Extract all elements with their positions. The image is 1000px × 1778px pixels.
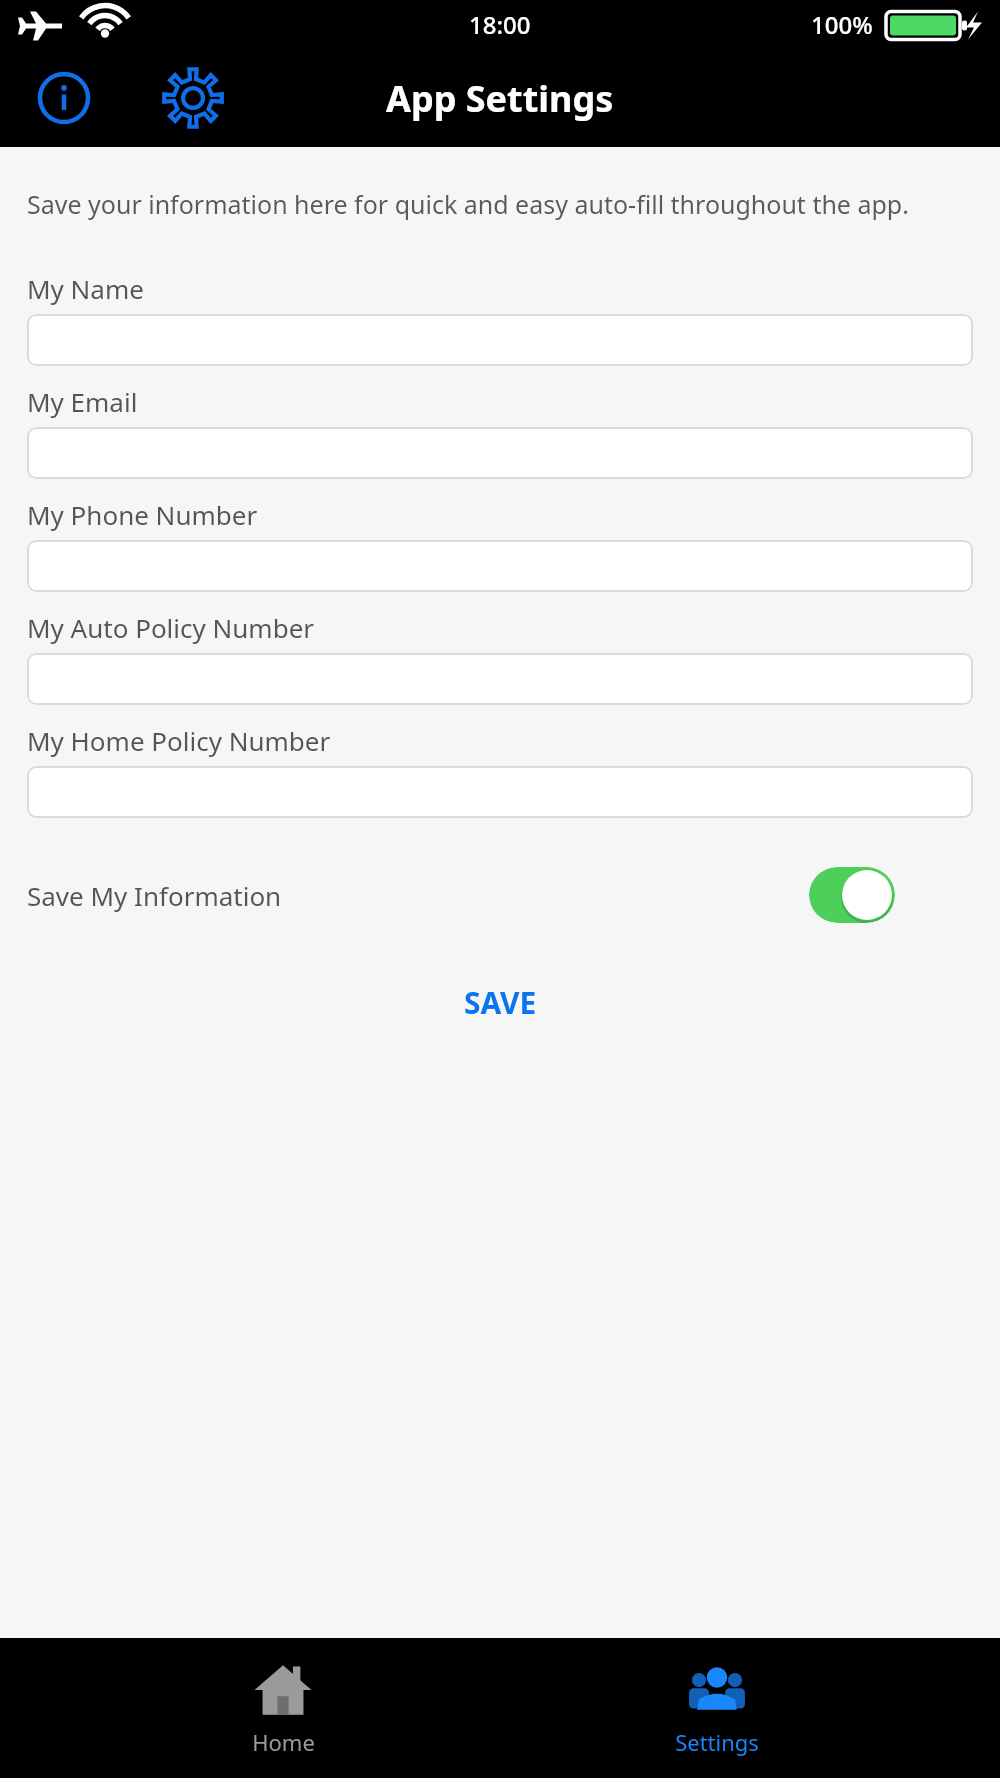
- button[interactable]: Settings: [150, 55, 236, 141]
- button[interactable]: [27, 314, 973, 366]
- button[interactable]: [27, 653, 973, 705]
- button[interactable]: Settings: [567, 1649, 867, 1767]
- staticText: Save your information here for quick and…: [27, 187, 909, 221]
- button[interactable]: Home: [133, 1649, 433, 1767]
- staticText: Save My Information: [27, 878, 282, 913]
- staticText: My Email: [27, 384, 138, 419]
- staticText: My Auto Policy Number: [27, 610, 315, 645]
- staticText: 18:00: [469, 8, 531, 41]
- staticText: Settings: [675, 1727, 759, 1757]
- button[interactable]: SAVE: [446, 974, 555, 1031]
- button[interactable]: Info: [24, 58, 104, 138]
- staticText: My Phone Number: [27, 497, 258, 532]
- button[interactable]: [27, 427, 973, 479]
- staticText: 100%: [811, 8, 873, 41]
- staticText: Home: [252, 1727, 315, 1757]
- staticText: App Settings: [386, 74, 614, 123]
- button[interactable]: [27, 766, 973, 818]
- staticText: My Home Policy Number: [27, 723, 331, 758]
- staticText: SAVE: [464, 982, 537, 1023]
- button[interactable]: [27, 540, 973, 592]
- button[interactable]: Save My Information toggle: [809, 867, 895, 923]
- staticText: My Name: [27, 271, 144, 306]
